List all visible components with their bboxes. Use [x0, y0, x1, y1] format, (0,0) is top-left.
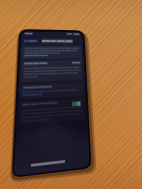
button[interactable]: Maksimal kapacitet 100 % — [20, 60, 83, 82]
button[interactable]: Home indicator — [29, 158, 67, 168]
button[interactable]: Optimeret batteriopladning switch, on — [71, 101, 81, 108]
button[interactable]: Back to Enhed — [23, 38, 39, 44]
button[interactable]: Battery information — [21, 46, 81, 60]
button[interactable]: Ydeevnestyring — [20, 83, 84, 100]
button[interactable]: Optimeret batteriopladning — [18, 98, 85, 125]
